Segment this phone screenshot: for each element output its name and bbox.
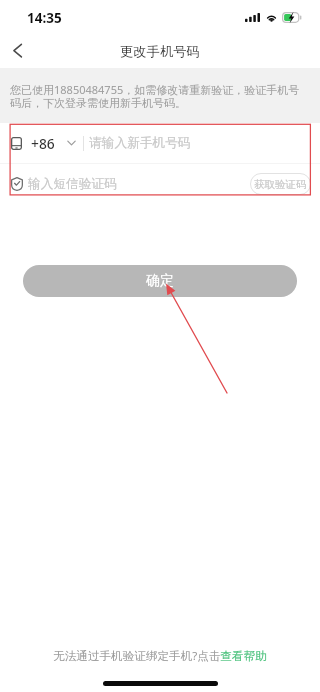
button[interactable]: 确定 xyxy=(23,265,297,297)
staticText: 您已使用18850484755，如需修改请重新验证，验证手机号码后，下次登录需使… xyxy=(10,82,310,110)
button[interactable]: 无法通过手机验证绑定手机?点击查看帮助 xyxy=(49,646,271,666)
staticText: 确定 xyxy=(146,272,174,290)
staticText: 更改手机号码 xyxy=(120,43,200,60)
staticText: 请输入新手机号码 xyxy=(89,135,191,151)
button[interactable]: Back xyxy=(0,31,38,68)
staticText: 14:35 xyxy=(27,9,62,27)
staticText: 获取验证码 xyxy=(254,178,307,191)
staticText: +86 xyxy=(31,134,55,153)
button[interactable]: +86 xyxy=(0,123,83,163)
staticText: 输入短信验证码 xyxy=(28,176,117,192)
staticText: 无法通过手机验证绑定手机?点击查看帮助 xyxy=(53,648,267,664)
button[interactable]: 获取验证码 xyxy=(250,173,311,195)
